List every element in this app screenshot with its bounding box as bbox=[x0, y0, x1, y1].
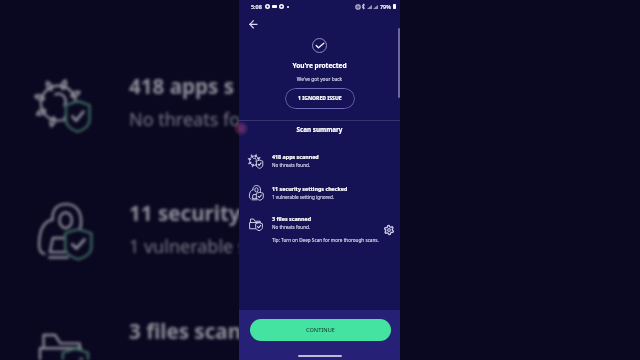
staticText: 1 vulnerable setting ignored. bbox=[272, 194, 335, 200]
button[interactable]: 11 security settings checked bbox=[239, 181, 400, 203]
staticText: 79% bbox=[380, 3, 391, 10]
staticText: 11 security settings checked bbox=[272, 185, 348, 192]
staticText: Scan summary bbox=[239, 125, 400, 134]
staticText: You're protected bbox=[239, 61, 400, 70]
staticText: We've got your back bbox=[239, 76, 400, 83]
staticText: 1 IGNORED ISSUE bbox=[298, 95, 342, 102]
staticText: 1 vulnerable s bbox=[129, 234, 247, 259]
staticText: No threats found. bbox=[272, 162, 311, 168]
button[interactable]: Settings bbox=[384, 225, 394, 235]
button[interactable]: 3 files scanned bbox=[239, 211, 400, 233]
button[interactable]: CONTINUE bbox=[250, 319, 391, 341]
button[interactable]: Back bbox=[241, 14, 261, 34]
staticText: 5:08 bbox=[251, 3, 262, 10]
staticText: 418 apps scanned bbox=[272, 153, 319, 160]
button[interactable]: 418 apps scanned bbox=[239, 149, 400, 171]
staticText: 11 security bbox=[129, 199, 241, 227]
staticText: 418 apps s bbox=[129, 72, 235, 100]
staticText: CONTINUE bbox=[306, 326, 335, 334]
staticText: 3 files scanned bbox=[272, 215, 312, 222]
staticText: 3 files scan bbox=[129, 317, 242, 345]
button[interactable]: 1 IGNORED ISSUE bbox=[285, 88, 355, 109]
staticText: No threats found. bbox=[272, 224, 311, 230]
staticText: No threats fo bbox=[129, 107, 241, 132]
staticText: Tip: Turn on Deep Scan for more thorough… bbox=[272, 237, 379, 243]
